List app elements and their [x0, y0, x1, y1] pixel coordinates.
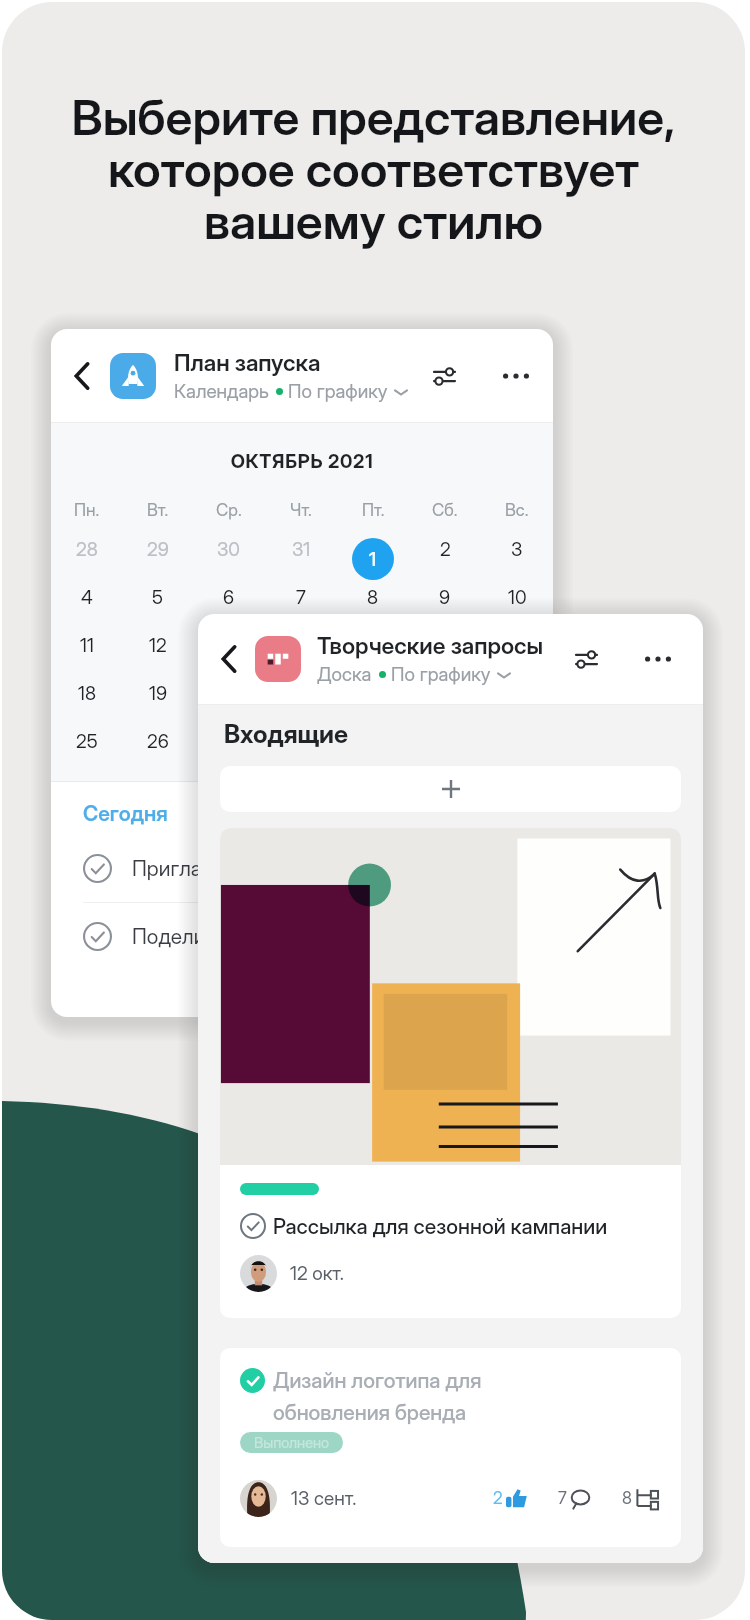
staticText: Чт.	[290, 500, 312, 521]
button[interactable]: More options	[643, 642, 673, 676]
staticText: Сб.	[432, 500, 458, 521]
staticText: 5	[152, 586, 163, 609]
staticText: 18	[78, 682, 96, 705]
button[interactable]: Subtasks	[622, 1488, 659, 1509]
staticText: Выполнено	[254, 1434, 329, 1452]
staticText: 10	[508, 586, 527, 609]
staticText: 31	[292, 538, 311, 561]
button[interactable]: Filter	[571, 642, 602, 676]
staticText: 21	[292, 682, 310, 705]
staticText: 8	[622, 1488, 632, 1509]
staticText: Пригласить команду	[132, 856, 333, 881]
staticText: 14	[292, 634, 311, 657]
staticText: ОКТЯБРЬ 2021	[51, 450, 553, 473]
button[interactable]: 1	[352, 538, 394, 580]
staticText: 15	[364, 634, 382, 657]
staticText: 12 окт.	[290, 1262, 344, 1285]
staticText: Вс.	[505, 500, 529, 521]
staticText: Сегодня	[83, 801, 168, 826]
staticText: 20	[218, 682, 241, 705]
staticText: Ср.	[216, 500, 242, 521]
button[interactable]: Пригласить команду	[51, 835, 553, 902]
staticText: 6	[223, 586, 235, 609]
staticText: Вт.	[147, 500, 169, 521]
staticText: Поделиться планом	[132, 924, 326, 949]
staticText: Пт.	[362, 500, 385, 521]
staticText: 13 сент.	[291, 1487, 357, 1510]
staticText: Дизайн логотипа для обновления бренда	[273, 1368, 482, 1425]
staticText: 30	[217, 538, 241, 561]
staticText: 4	[81, 586, 93, 609]
staticText: 26	[147, 730, 169, 753]
staticText: 7	[558, 1488, 567, 1509]
button[interactable]: Рассылка для сезонной кампании	[220, 828, 681, 1318]
staticText: 22	[362, 682, 384, 705]
staticText: 19	[149, 682, 167, 705]
staticText: Календарь	[174, 380, 269, 403]
staticText: 8	[367, 586, 379, 609]
staticText: Творческие запросы	[317, 632, 544, 660]
button[interactable]: Back	[212, 642, 246, 676]
button[interactable]: Like	[493, 1488, 527, 1509]
staticText: 1	[369, 548, 377, 571]
staticText: 28	[76, 538, 98, 561]
staticText: Пн.	[74, 500, 100, 521]
button[interactable]: Filter	[429, 359, 460, 393]
staticText: 25	[76, 730, 98, 753]
staticText: План запуска	[174, 349, 321, 377]
button[interactable]: More options	[501, 359, 531, 393]
staticText: 24	[506, 682, 529, 705]
staticText: 16	[436, 634, 454, 657]
staticText: 11	[80, 634, 94, 657]
staticText: 2	[493, 1488, 503, 1509]
staticText: 17	[509, 634, 526, 657]
staticText: По графику	[391, 663, 491, 686]
staticText: Рассылка для сезонной кампании	[273, 1214, 608, 1239]
staticText: Доска	[317, 663, 372, 686]
staticText: 7	[296, 586, 306, 609]
button[interactable]: Поделиться планом	[51, 903, 553, 970]
staticText: По графику	[288, 380, 388, 403]
staticText: 28	[290, 730, 312, 753]
staticText: 13	[220, 634, 239, 657]
button[interactable]: Add task	[220, 766, 681, 812]
staticText: 3	[511, 538, 523, 561]
staticText: Входящие	[224, 719, 348, 749]
staticText: 23	[434, 682, 457, 705]
staticText: 9	[439, 586, 451, 609]
button[interactable]: Back	[65, 359, 99, 393]
button[interactable]: Comments	[558, 1488, 591, 1509]
staticText: 12	[149, 634, 167, 657]
button[interactable]: Дизайн логотипа для обновления бренда	[220, 1348, 681, 1547]
staticText: 2	[440, 538, 451, 561]
staticText: 27	[219, 730, 240, 753]
staticText: Выберите представление, которое соответс…	[2, 88, 745, 250]
staticText: 29	[147, 538, 169, 561]
